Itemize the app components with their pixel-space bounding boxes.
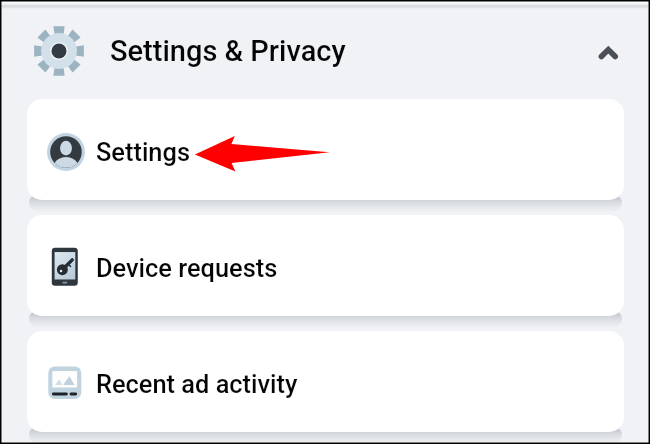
staticText: Device requests xyxy=(96,253,278,283)
staticText: Settings & Privacy xyxy=(110,34,346,68)
button[interactable]: Recent ad activity xyxy=(27,331,624,432)
staticText: Settings xyxy=(96,137,190,167)
button[interactable]: Device requests xyxy=(27,215,624,316)
button[interactable]: Settings xyxy=(27,99,624,200)
button[interactable]: Collapse section xyxy=(588,30,628,70)
button[interactable]: Settings & Privacy xyxy=(2,2,648,98)
staticText: Recent ad activity xyxy=(96,369,298,399)
